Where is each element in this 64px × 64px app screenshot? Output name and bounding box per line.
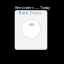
staticText: Details bbox=[28, 10, 42, 15]
staticText: Reminders — Today bbox=[15, 5, 50, 10]
staticText: ‹ Back bbox=[17, 10, 28, 15]
